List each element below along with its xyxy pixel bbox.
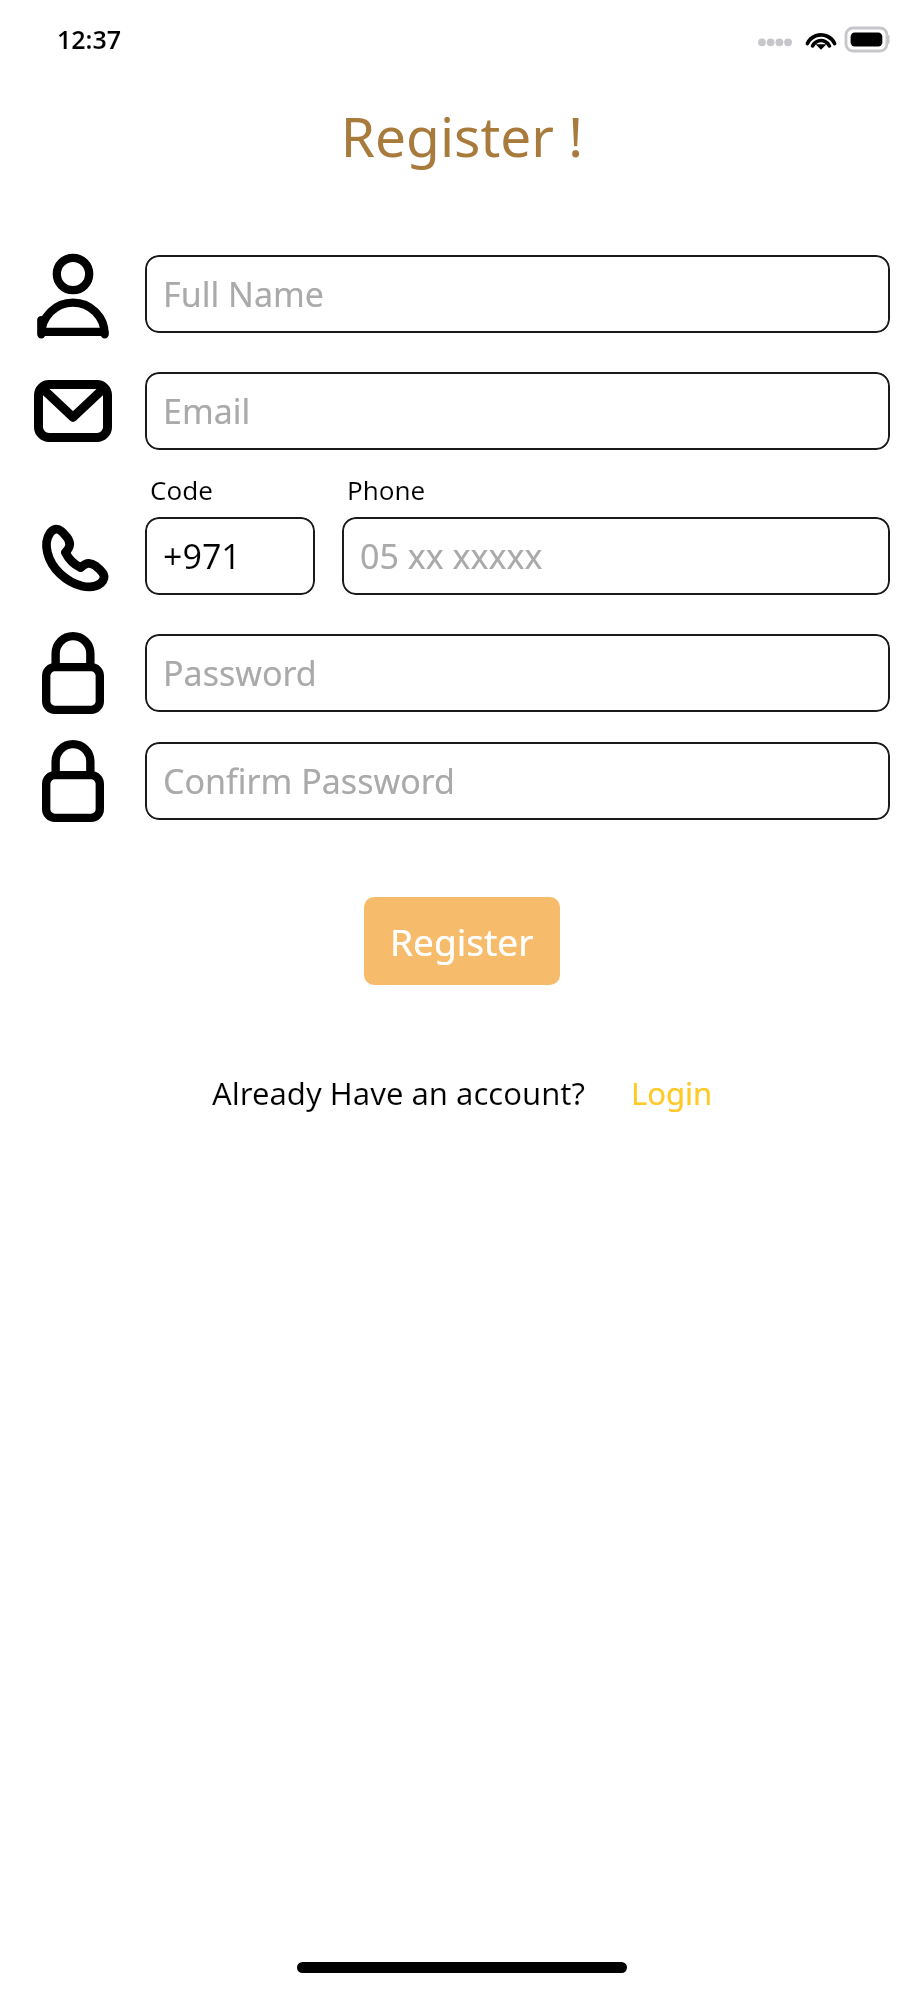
staticText: Email: [163, 388, 251, 434]
staticText: Full Name: [163, 271, 324, 317]
staticText: Register !: [0, 98, 924, 173]
button[interactable]: Full Name: [145, 255, 890, 333]
staticText: 12:37: [57, 22, 122, 56]
button[interactable]: +971: [145, 517, 315, 595]
staticText: Already Have an account?: [212, 1072, 585, 1114]
other: Phone: [35, 519, 111, 595]
other: Email: [34, 380, 112, 442]
other: Password: [42, 632, 104, 714]
button[interactable]: Password: [145, 634, 890, 712]
other: Password: [42, 740, 104, 822]
button[interactable]: 05 xx xxxxx: [342, 517, 890, 595]
other: Name: [37, 252, 109, 336]
staticText: +971: [163, 533, 241, 579]
staticText: Register: [390, 916, 534, 966]
staticText: Code: [150, 472, 213, 507]
button[interactable]: Email: [145, 372, 890, 450]
staticText: Login: [631, 1072, 713, 1114]
staticText: Phone: [347, 472, 426, 507]
button[interactable]: Login: [631, 1072, 713, 1114]
button[interactable]: Confirm Password: [145, 742, 890, 820]
button[interactable]: Register: [364, 897, 560, 985]
staticText: Confirm Password: [163, 758, 455, 804]
staticText: 05 xx xxxxx: [360, 533, 543, 579]
staticText: Password: [163, 650, 317, 696]
